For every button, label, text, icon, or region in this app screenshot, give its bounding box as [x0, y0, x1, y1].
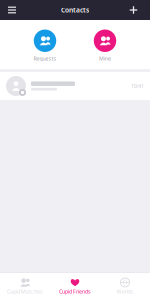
staticText: Cupid Matches — [7, 288, 43, 295]
button[interactable]: 10:41 — [0, 72, 150, 100]
button[interactable]: Menu — [0, 0, 24, 20]
button[interactable]: Cupid Friends — [50, 273, 100, 299]
staticText: Requests — [33, 55, 56, 62]
button[interactable]: Requests — [22, 29, 68, 61]
button[interactable]: Worlds — [100, 273, 150, 299]
button[interactable]: Mine — [82, 29, 128, 61]
button[interactable]: Cupid Matches — [0, 273, 50, 299]
staticText: Worlds — [116, 288, 133, 295]
staticText: Cupid Friends — [59, 288, 91, 295]
staticText: Mine — [99, 55, 111, 62]
staticText: 10:41 — [131, 82, 144, 90]
button[interactable]: Add contact — [117, 0, 150, 20]
staticText: Contacts — [61, 6, 89, 14]
